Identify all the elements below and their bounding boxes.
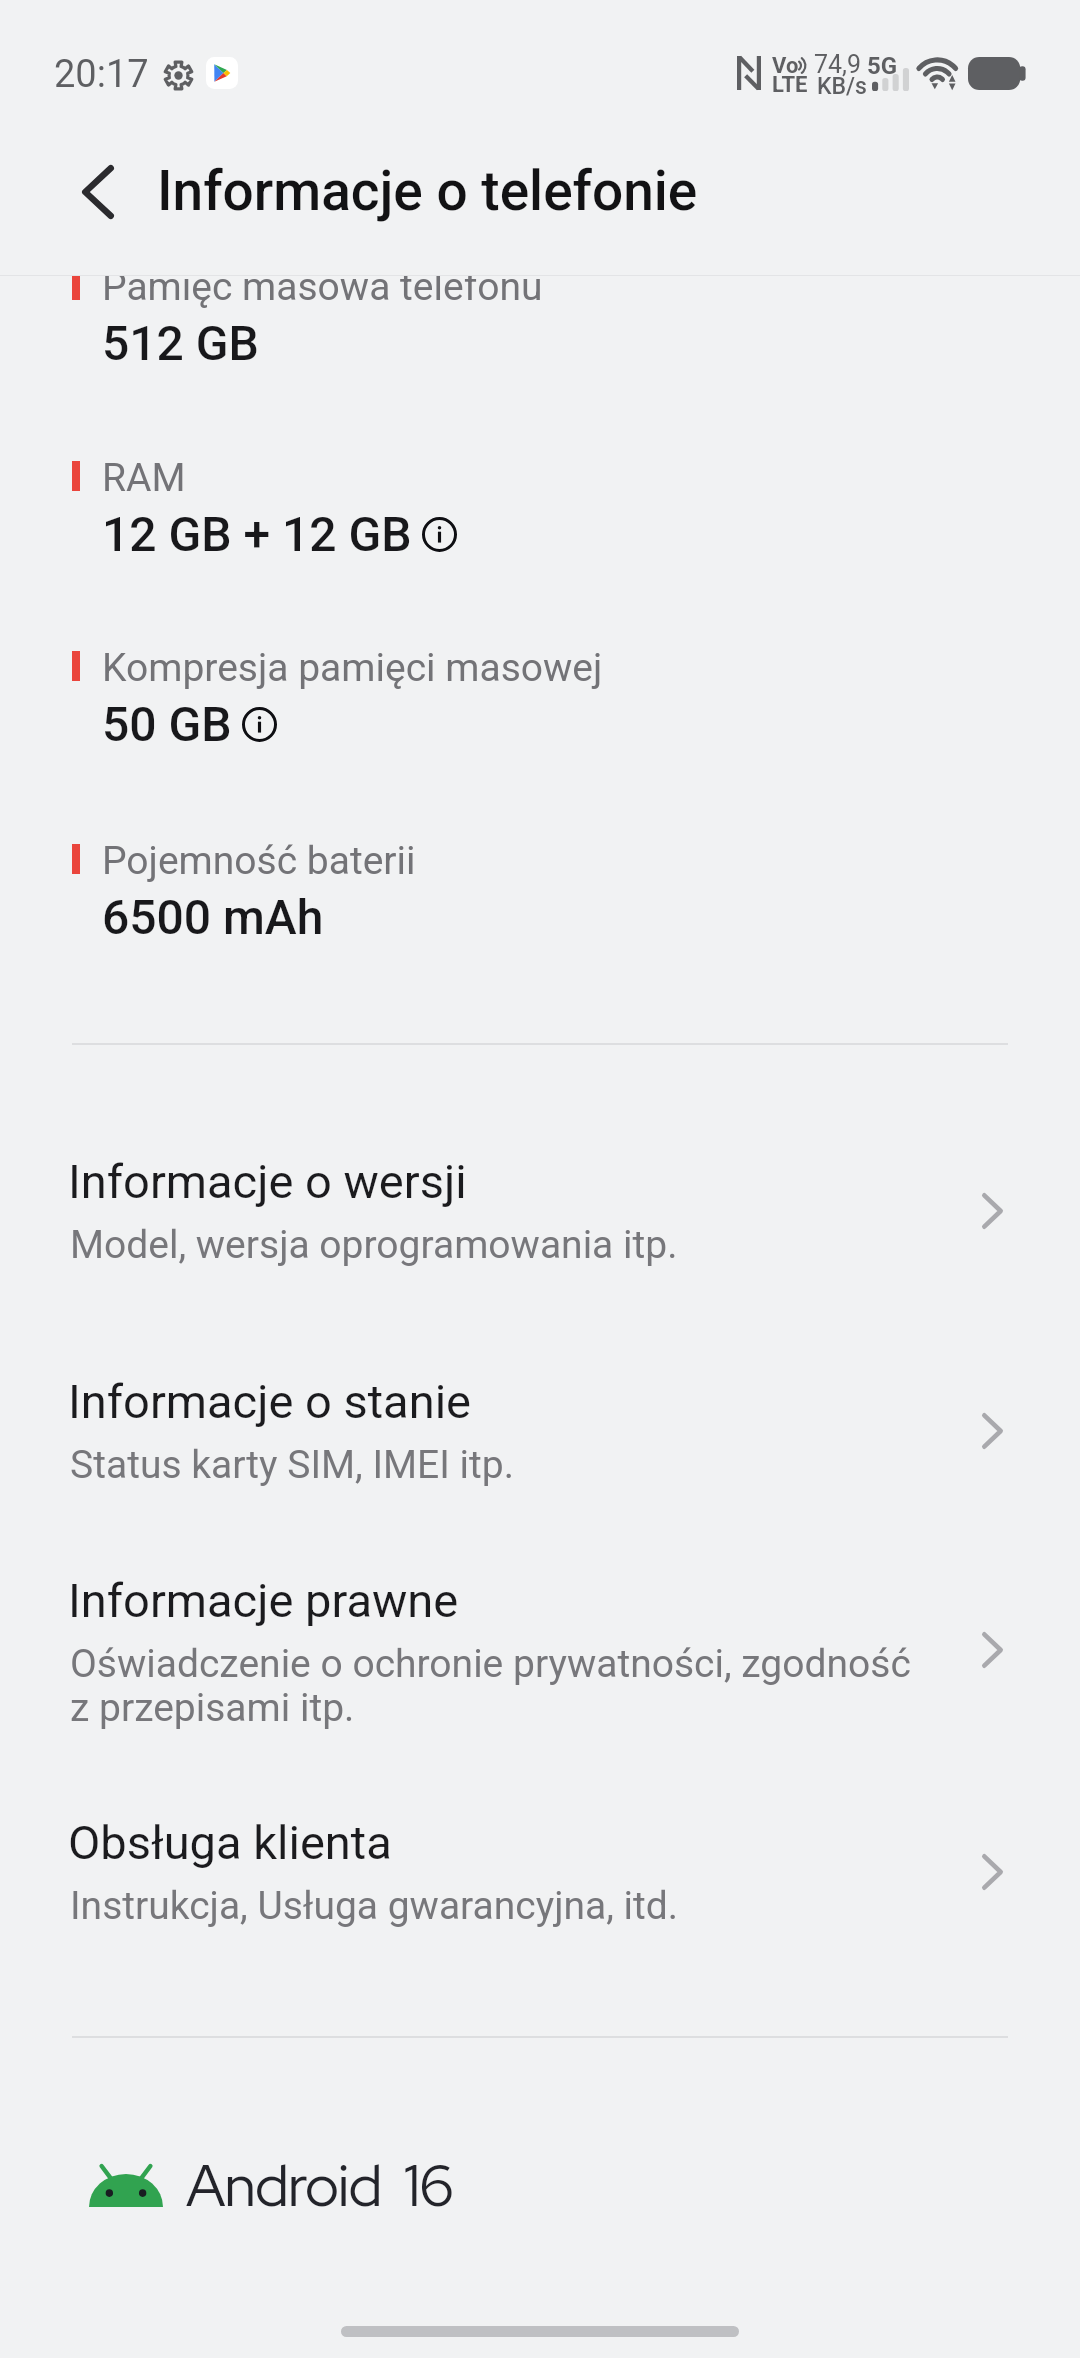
staticText: Informacje prawne [68,1573,459,1628]
staticText: Instrukcja, Usługa gwarancyjna, itd. [70,1883,679,1929]
button[interactable]: Informacje o stanie [0,1352,1080,1511]
staticText: Obsługa klienta [68,1815,392,1870]
staticText: 20:17 [54,52,149,97]
staticText: KB/s [817,73,867,100]
staticText: RAM [102,455,186,501]
staticText: Pamięć masowa telefonu [102,264,543,310]
staticText: 5G [867,52,898,80]
staticText: Kompresja pamięci masowej [102,645,603,691]
button[interactable]: Informacje prawne [0,1551,1080,1757]
staticText: 6500 mAh [102,889,324,945]
staticText: 74,9 [814,50,862,79]
button[interactable]: Obsługa klienta [0,1793,1080,1952]
staticText: Informacje o stanie [68,1374,471,1429]
staticText: Informacje o telefonie [157,159,698,223]
staticText: 12 GB + 12 GB [102,506,412,562]
staticText: LTE [772,72,808,98]
button[interactable]: Informacje o wersji [0,1132,1080,1291]
button[interactable]: More information about RAM [422,517,457,552]
staticText: 512 GB [102,315,259,371]
staticText: Informacje o wersji [68,1154,467,1209]
staticText: Vo [772,53,799,79]
staticText: 50 GB [102,696,232,752]
staticText: Status karty SIM, IMEI itp. [70,1442,514,1488]
button[interactable]: More information about Kompresja pamięci… [242,707,277,742]
staticText: Oświadczenie o ochronie prywatności, zgo… [70,1641,911,1730]
staticText: Android 16 [186,2147,453,2224]
staticText: Model, wersja oprogramowania itp. [70,1222,678,1268]
button[interactable]: Back [58,152,138,232]
staticText: Pojemność baterii [102,838,416,884]
